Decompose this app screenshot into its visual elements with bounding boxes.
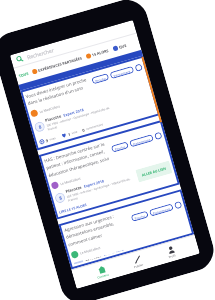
- button[interactable]: Proche: [111, 141, 129, 153]
- button[interactable]: Pansement: [149, 203, 174, 217]
- button[interactable]: Contenu: [92, 264, 112, 280]
- button[interactable]: TOUS: [18, 71, 29, 78]
- staticText: IDE 1990 - infirmier - Gynécologie - Hôp…: [66, 177, 131, 199]
- button[interactable]: Pansement: [129, 134, 154, 147]
- staticText: 8: [58, 194, 63, 201]
- button[interactable]: Vous devez intégrer un proche dans la ré…: [20, 55, 160, 150]
- staticText: Pansement: [152, 206, 171, 215]
- button[interactable]: LIRE LE 15 ALORS: [58, 202, 88, 215]
- staticText: Placotte: [85, 255, 102, 261]
- staticText: Pansement: [132, 137, 151, 146]
- button[interactable]: EXPÉRIENCES PARTAGÉES: [32, 55, 83, 74]
- staticText: 8: [38, 123, 42, 130]
- button[interactable]: 15 ALORS: [85, 48, 110, 59]
- staticText: ALLER AU LIEN: [141, 166, 167, 177]
- staticText: vues: [49, 136, 57, 141]
- staticText: France): [47, 125, 58, 132]
- staticText: 15 ALORS: [91, 48, 110, 57]
- staticText: Proche: [134, 213, 146, 220]
- staticText: Placotte: [65, 185, 83, 194]
- staticText: Vous devez intégrer un proche dans la ré…: [25, 75, 92, 106]
- staticText: 1: [67, 131, 72, 137]
- button[interactable]: QUE: [112, 43, 127, 51]
- staticText: Profil: [168, 253, 177, 259]
- button[interactable]: Agression aux urgences : démantelons ens…: [58, 189, 194, 270]
- button[interactable]: Publier: [128, 254, 147, 270]
- staticText: 0: [82, 127, 86, 133]
- button[interactable]: Pansement: [109, 66, 134, 79]
- button[interactable]: Profil: [163, 245, 180, 260]
- staticText: Rechercher: [26, 46, 55, 60]
- staticText: …: [156, 134, 160, 139]
- button[interactable]: ALLER AU LIEN: [135, 160, 172, 182]
- staticText: Publier: [133, 262, 144, 269]
- button[interactable]: Proche: [91, 73, 109, 84]
- staticText: commentaire: [86, 122, 104, 131]
- staticText: Proche: [95, 76, 106, 83]
- staticText: Placotte: [44, 113, 62, 123]
- staticText: HAS : Demarche centrée sur le patient : …: [43, 140, 113, 178]
- staticText: France): [68, 196, 78, 203]
- staticText: Expert 2018: [83, 178, 105, 189]
- staticText: Pansement: [113, 69, 131, 77]
- staticText: 8: [77, 261, 81, 263]
- staticText: TOUS: [18, 71, 29, 78]
- button[interactable]: Proche: [131, 210, 149, 222]
- staticText: QUE: [118, 43, 127, 50]
- button[interactable]: Plus de tags: [154, 132, 163, 140]
- staticText: Le MedCollect: [39, 104, 61, 114]
- staticText: Le MedCollect: [60, 176, 82, 186]
- staticText: Expert 2018: [63, 107, 84, 118]
- staticText: …: [176, 203, 180, 208]
- staticText: IDE 1990 - infirmier - Gynécologie - Hôp…: [46, 106, 111, 128]
- button[interactable]: Plus de tags: [134, 63, 143, 72]
- button[interactable]: HAS : Demarche centrée sur le patient : …: [38, 120, 180, 220]
- staticText: 9: [45, 138, 49, 143]
- staticText: vote: [71, 130, 78, 135]
- staticText: Expert 2018: [103, 248, 124, 256]
- staticText: EXPÉRIENCES PARTAGÉES: [37, 55, 83, 73]
- staticText: Contenu: [97, 272, 110, 280]
- staticText: Agression aux urgences : démantelons ens…: [63, 209, 132, 247]
- staticText: Proche: [114, 144, 126, 151]
- staticText: …: [137, 66, 141, 70]
- button[interactable]: Plus de tags: [174, 201, 182, 209]
- button[interactable]: Rechercher: [15, 20, 136, 66]
- staticText: Le MedCollect: [80, 245, 102, 255]
